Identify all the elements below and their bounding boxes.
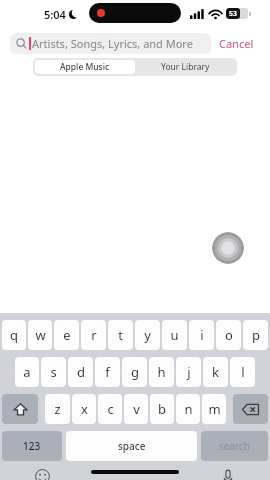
staticText: space <box>118 439 146 453</box>
staticText: b <box>158 400 166 418</box>
button[interactable]: AssistiveTouch <box>212 232 244 264</box>
button[interactable]: w <box>28 320 52 350</box>
staticText: Your Library <box>161 61 210 73</box>
staticText: m <box>208 400 221 418</box>
staticText: c <box>107 400 114 418</box>
button[interactable]: i <box>189 320 214 350</box>
button[interactable]: d <box>68 357 93 387</box>
button[interactable]: j <box>176 357 201 387</box>
staticText: x <box>81 400 88 418</box>
button[interactable]: b <box>150 394 174 424</box>
staticText: k <box>212 363 219 381</box>
staticText: Cancel <box>219 36 254 51</box>
staticText: o <box>225 326 233 344</box>
button[interactable]: x <box>72 394 96 424</box>
button[interactable]: Your Library <box>135 60 235 74</box>
staticText: j <box>187 363 191 381</box>
staticText: l <box>241 363 245 381</box>
staticText: s <box>50 363 57 381</box>
staticText: r <box>91 326 97 344</box>
staticText: v <box>133 400 140 418</box>
staticText: a <box>23 363 31 381</box>
button[interactable]: space <box>66 431 197 461</box>
button[interactable]: a <box>15 357 39 387</box>
staticText: h <box>157 363 166 381</box>
button[interactable]: k <box>203 357 228 387</box>
button[interactable]: m <box>202 394 226 424</box>
button[interactable]: search <box>201 431 268 461</box>
staticText: d <box>77 363 85 381</box>
button[interactable]: r <box>81 320 106 350</box>
staticText: t <box>118 326 123 344</box>
staticText: i <box>200 326 204 344</box>
staticText: y <box>144 326 151 344</box>
button[interactable]: e <box>54 320 79 350</box>
staticText: 53 <box>229 9 238 19</box>
button[interactable]: p <box>243 320 268 350</box>
staticText: Artists, Songs, Lyrics, and More <box>32 36 193 51</box>
button[interactable]: v <box>124 394 148 424</box>
button[interactable]: Backspace <box>233 394 268 424</box>
staticText: 5:04 <box>44 7 66 22</box>
button[interactable]: Apple Music <box>35 60 135 74</box>
button[interactable]: f <box>95 357 120 387</box>
staticText: n <box>184 400 193 418</box>
button[interactable]: c <box>98 394 122 424</box>
button[interactable]: 123 <box>2 431 62 461</box>
staticText: e <box>63 326 71 344</box>
button[interactable]: Dictation <box>218 467 238 480</box>
button[interactable]: l <box>230 357 255 387</box>
button[interactable]: Cancel <box>211 32 262 55</box>
button[interactable]: o <box>216 320 241 350</box>
button[interactable]: q <box>2 320 26 350</box>
button[interactable]: z <box>45 394 70 424</box>
staticText: Apple Music <box>60 61 110 73</box>
button[interactable]: t <box>108 320 133 350</box>
button[interactable]: g <box>122 357 147 387</box>
button[interactable]: Emoji <box>32 467 52 480</box>
button[interactable]: Shift <box>2 394 38 424</box>
staticText: u <box>170 326 179 344</box>
staticText: p <box>252 326 260 344</box>
staticText: g <box>131 363 139 381</box>
button[interactable]: Artists, Songs, Lyrics, and More <box>10 33 211 54</box>
button[interactable]: y <box>135 320 160 350</box>
staticText: f <box>105 363 110 381</box>
staticText: w <box>35 326 46 344</box>
staticText: 123 <box>23 439 41 453</box>
button[interactable]: u <box>162 320 187 350</box>
button[interactable]: h <box>149 357 174 387</box>
button[interactable]: n <box>176 394 200 424</box>
button[interactable]: s <box>41 357 66 387</box>
staticText: z <box>54 400 61 418</box>
staticText: q <box>10 326 18 344</box>
staticText: search <box>219 439 250 453</box>
